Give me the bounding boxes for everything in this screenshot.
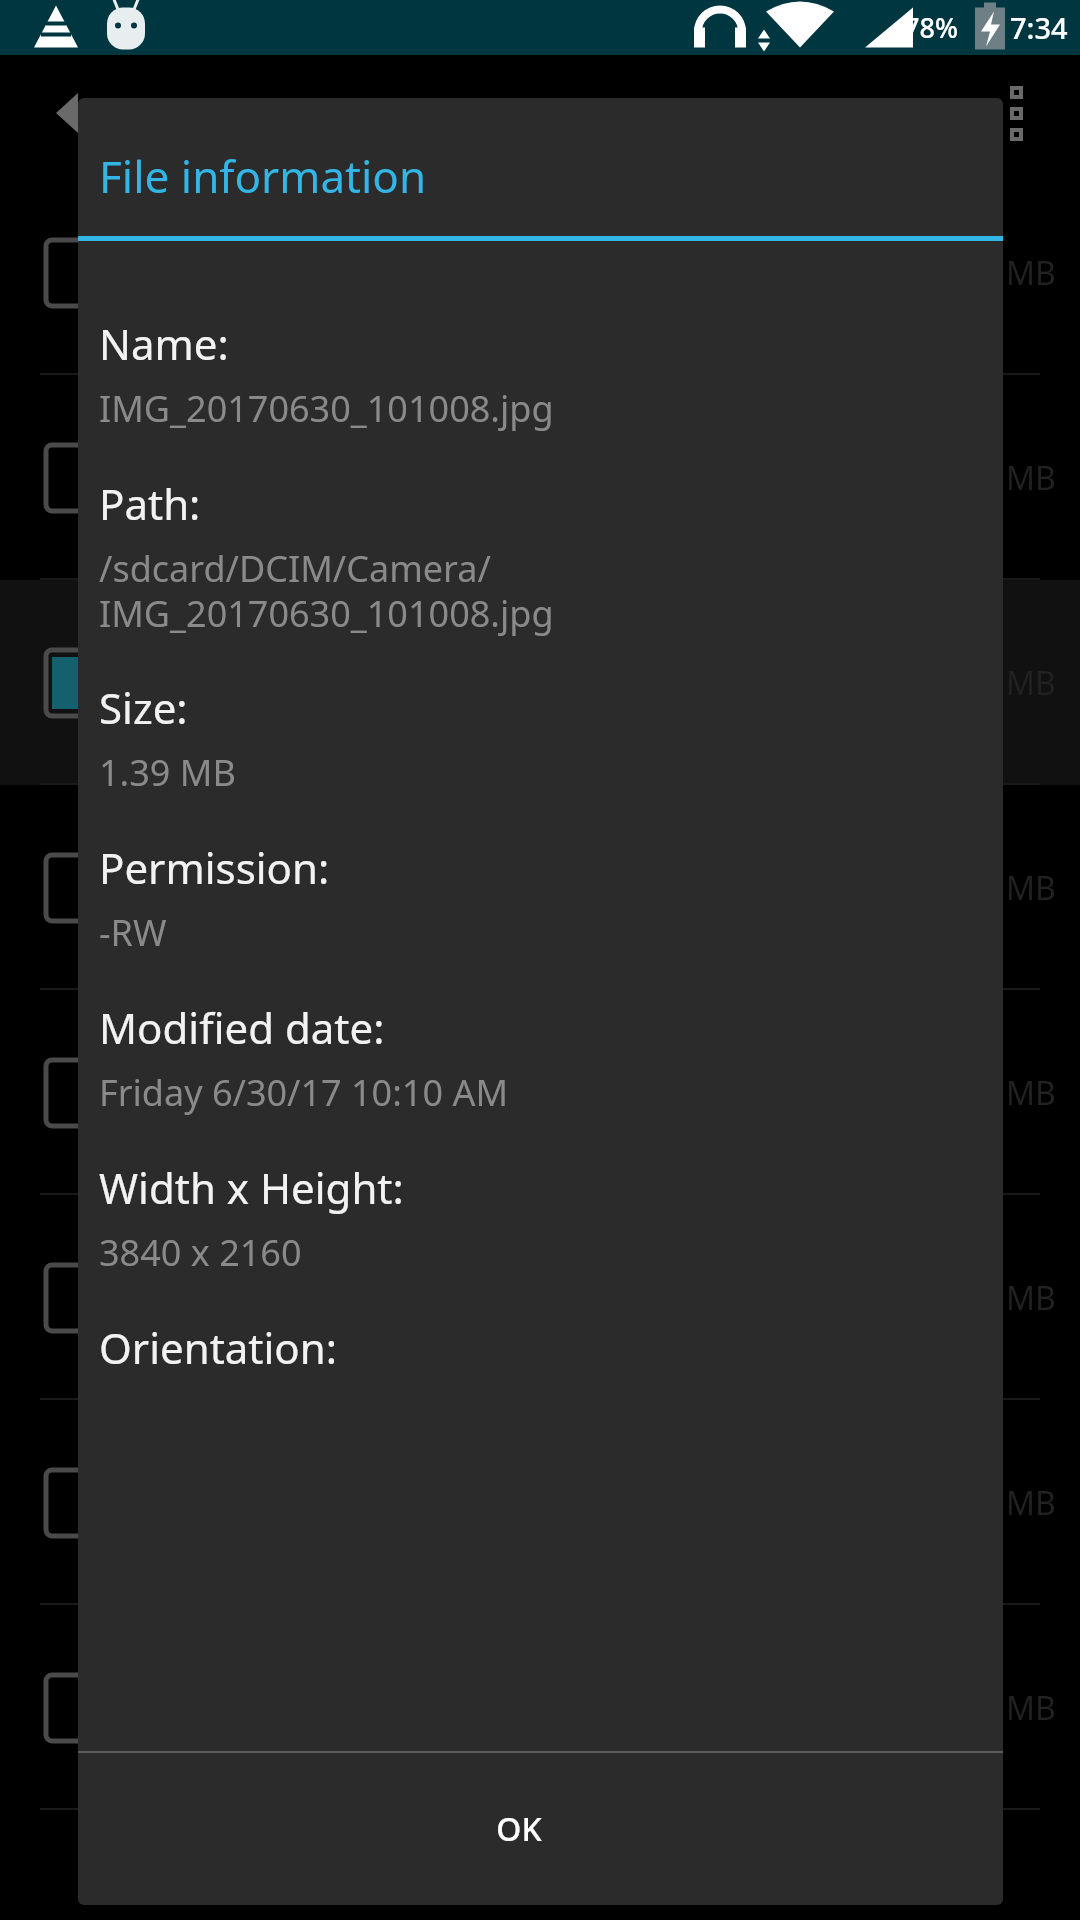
- staticText: Name:: [99, 315, 229, 372]
- staticText: MB: [1006, 661, 1056, 705]
- staticText: Width x Height:: [99, 1159, 404, 1216]
- staticText: MB: [1006, 866, 1056, 910]
- button[interactable]: MB: [0, 1605, 1080, 1810]
- button[interactable]: MB: [0, 375, 1080, 580]
- staticText: File information: [99, 146, 427, 206]
- staticText: MB: [1006, 1276, 1056, 1320]
- button[interactable]: MB: [0, 580, 1080, 785]
- staticText: Permission:: [99, 839, 330, 896]
- button[interactable]: MB: [0, 990, 1080, 1195]
- button[interactable]: OK: [456, 1789, 582, 1869]
- staticText: MB: [1006, 456, 1056, 500]
- staticText: IMG_20170630_101008.jpg: [99, 384, 554, 433]
- staticText: Orientation:: [99, 1319, 337, 1376]
- staticText: Friday 6/30/17 10:10 AM: [99, 1068, 509, 1117]
- staticText: 78%: [904, 9, 958, 46]
- staticText: MB: [1006, 1686, 1056, 1730]
- staticText: /sdcard/DCIM/Camera/ IMG_20170630_101008…: [99, 544, 554, 637]
- button[interactable]: Back: [30, 73, 110, 153]
- staticText: MB: [1006, 1071, 1056, 1115]
- button[interactable]: More options: [980, 77, 1052, 149]
- button[interactable]: MB: [0, 1195, 1080, 1400]
- staticText: MB: [1006, 1481, 1056, 1525]
- button[interactable]: MB: [0, 1400, 1080, 1605]
- staticText: Size:: [99, 679, 188, 736]
- button[interactable]: MB: [0, 785, 1080, 990]
- staticText: 3840 x 2160: [99, 1228, 302, 1277]
- staticText: 7:34: [1010, 8, 1068, 47]
- staticText: -RW: [99, 908, 167, 957]
- staticText: OK: [496, 1807, 542, 1851]
- staticText: Modified date:: [99, 999, 385, 1056]
- staticText: Path:: [99, 475, 201, 532]
- button[interactable]: MB: [0, 170, 1080, 375]
- staticText: MB: [1006, 251, 1056, 295]
- staticText: 1.39 MB: [99, 748, 236, 797]
